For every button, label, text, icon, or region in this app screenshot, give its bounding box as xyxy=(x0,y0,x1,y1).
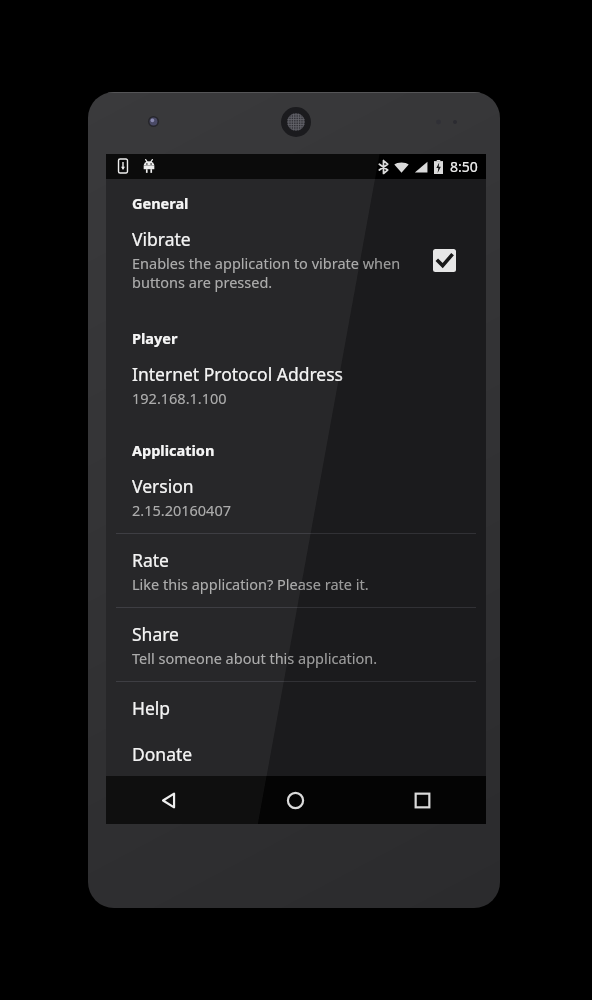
staticText: Tell someone about this application. xyxy=(132,648,378,668)
staticText: Application xyxy=(132,440,215,460)
staticText: Help xyxy=(132,696,171,720)
button[interactable]: Internet Protocol Address xyxy=(106,362,486,408)
button[interactable]: Help xyxy=(106,696,486,720)
button[interactable]: Version xyxy=(106,474,486,520)
staticText: Enables the application to vibrate when … xyxy=(132,253,422,292)
staticText: Vibrate xyxy=(132,227,191,251)
button[interactable]: Home xyxy=(232,776,359,824)
staticText: Rate xyxy=(132,548,169,572)
staticText: General xyxy=(132,193,189,213)
button[interactable]: Vibrate toggle xyxy=(422,238,466,282)
staticText: Internet Protocol Address xyxy=(132,362,343,386)
staticText: Share xyxy=(132,622,179,646)
button[interactable]: Donate xyxy=(106,742,486,766)
staticText: 2.15.20160407 xyxy=(132,500,232,520)
staticText: Donate xyxy=(132,742,193,766)
button[interactable]: Back xyxy=(106,776,232,824)
button[interactable]: Rate xyxy=(106,548,486,594)
staticText: Player xyxy=(132,328,178,348)
button[interactable]: Recents xyxy=(359,776,486,824)
button[interactable]: Vibrate xyxy=(106,227,486,292)
button[interactable]: Share xyxy=(106,622,486,668)
staticText: 192.168.1.100 xyxy=(132,388,227,408)
staticText: 8:50 xyxy=(450,157,478,176)
staticText: Version xyxy=(132,474,194,498)
staticText: Like this application? Please rate it. xyxy=(132,574,369,594)
